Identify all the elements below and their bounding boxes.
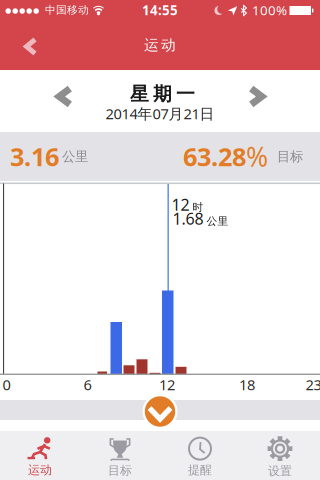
button[interactable]: Collapse chart xyxy=(142,394,177,429)
staticText: 公里 xyxy=(206,215,228,228)
staticText: 63.28 xyxy=(183,140,246,173)
staticText: 星期一 xyxy=(130,82,195,105)
staticText: 时 xyxy=(192,201,203,214)
staticText: 提醒 xyxy=(188,463,212,477)
button[interactable]: 设置 xyxy=(240,431,320,480)
staticText: 目标 xyxy=(108,463,132,478)
staticText: 14:55 xyxy=(142,1,178,19)
button[interactable]: Next day xyxy=(234,72,279,121)
staticText: 12 xyxy=(159,375,175,394)
staticText: 1.68 xyxy=(172,208,203,229)
staticText: 设置 xyxy=(268,464,292,478)
staticText: 3.16 xyxy=(10,140,59,173)
button[interactable]: 提醒 xyxy=(160,431,240,480)
staticText: % xyxy=(246,139,268,174)
button[interactable]: Previous day xyxy=(42,72,87,121)
staticText: 2014年07月21日 xyxy=(105,104,214,123)
staticText: 18 xyxy=(239,375,255,394)
staticText: 运动 xyxy=(144,36,176,54)
staticText: 23 xyxy=(305,375,320,394)
staticText: 中国移动 xyxy=(45,3,89,16)
button[interactable]: 运动 xyxy=(0,431,80,480)
staticText: 公里 xyxy=(62,148,88,165)
button[interactable]: Back xyxy=(0,22,46,68)
staticText: 100% xyxy=(252,1,287,19)
staticText: 目标 xyxy=(277,148,303,165)
staticText: 6 xyxy=(83,375,91,394)
staticText: 0 xyxy=(2,375,10,394)
staticText: 12 xyxy=(171,194,189,215)
staticText: 运动 xyxy=(28,463,52,477)
button[interactable]: 目标 xyxy=(80,431,160,480)
